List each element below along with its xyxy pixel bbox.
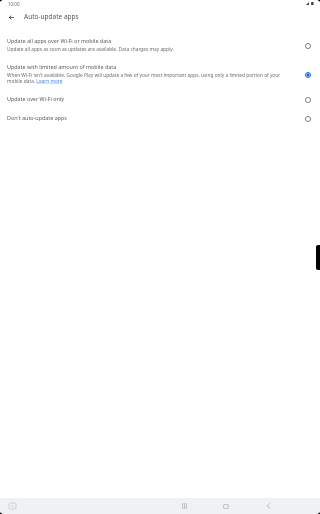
button[interactable]: Update with limited amount of mobile dat… [0, 57, 320, 89]
button[interactable]: Update over Wi-Fi only [0, 89, 320, 108]
staticText: Update all apps over Wi-Fi or mobile dat… [7, 36, 112, 45]
staticText: Auto-update apps [24, 12, 79, 21]
button[interactable]: Back [260, 498, 276, 514]
button[interactable]: Update all apps over Wi-Fi or mobile dat… [0, 31, 320, 57]
button[interactable]: Back [3, 9, 19, 25]
staticText: When Wi-Fi isn't available, Google Play … [7, 72, 287, 84]
staticText: Update all apps as soon as updates are a… [7, 46, 174, 52]
staticText: 10:00 [8, 1, 20, 7]
button[interactable]: Recent apps [176, 498, 192, 514]
button[interactable]: Hide keyboard [7, 501, 17, 511]
button[interactable]: Don't auto-update apps [0, 108, 320, 127]
staticText: Update over Wi-Fi only [7, 94, 65, 103]
button[interactable]: Home [218, 498, 234, 514]
staticText: Update with limited amount of mobile dat… [7, 62, 117, 71]
staticText: Don't auto-update apps [7, 113, 67, 122]
